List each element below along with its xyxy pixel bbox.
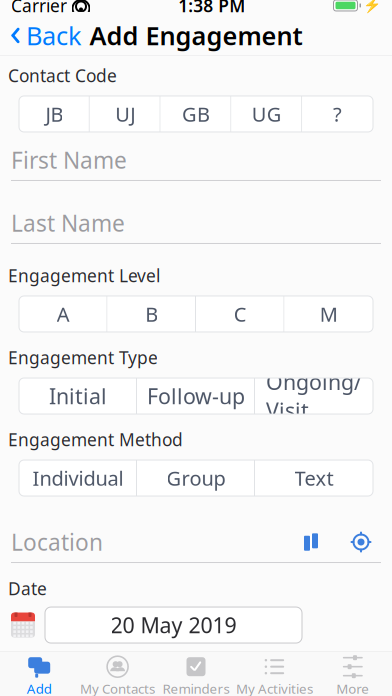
staticText: Back — [26, 19, 82, 52]
staticText: Carrier — [11, 0, 67, 17]
button[interactable]: Use current location — [347, 528, 375, 556]
button[interactable]: C — [196, 296, 284, 332]
button[interactable]: Group — [137, 460, 255, 496]
button[interactable]: Follow-up — [137, 378, 255, 414]
button[interactable]: Pick date — [11, 612, 35, 637]
staticText: Contact Code — [8, 64, 117, 87]
staticText: Group — [166, 465, 225, 491]
staticText: Individual — [32, 465, 123, 491]
staticText: B — [145, 301, 158, 327]
button[interactable]: Ongoing/Visit — [255, 378, 373, 414]
staticText: Ongoing/Visit — [266, 368, 362, 424]
staticText: 1:38 PM — [178, 0, 245, 17]
button[interactable]: Reminders — [157, 651, 235, 696]
button[interactable]: JB — [19, 96, 90, 132]
staticText: JB — [45, 101, 63, 127]
button[interactable]: ? — [302, 96, 373, 132]
staticText: UJ — [115, 101, 135, 127]
staticText: Add — [27, 680, 52, 696]
staticText: More — [336, 680, 369, 696]
staticText: GB — [182, 101, 210, 127]
staticText: Location — [11, 527, 103, 557]
button[interactable]: UG — [231, 96, 302, 132]
button[interactable]: Add — [0, 651, 78, 696]
staticText: UG — [252, 101, 282, 127]
staticText: Last Name — [11, 208, 125, 238]
staticText: Add Engagement — [89, 19, 302, 52]
button[interactable]: B — [107, 296, 196, 332]
staticText: A — [57, 301, 70, 327]
button[interactable]: Individual — [19, 460, 137, 496]
button[interactable]: GB — [161, 96, 231, 132]
staticText: C — [234, 301, 247, 327]
button[interactable]: My Contacts — [78, 651, 157, 696]
button[interactable]: Text — [255, 460, 373, 496]
staticText: Text — [294, 465, 333, 491]
staticText: My Contacts — [80, 680, 155, 696]
button[interactable]: More — [314, 651, 392, 696]
staticText: 20 May 2019 — [110, 611, 236, 639]
staticText: ⚡ — [363, 0, 381, 14]
button[interactable]: Initial — [19, 378, 137, 414]
button[interactable]: Back — [0, 15, 92, 55]
staticText: First Name — [11, 145, 127, 175]
staticText: Engagement Type — [8, 346, 158, 369]
button[interactable]: UJ — [90, 96, 161, 132]
button[interactable]: A — [19, 296, 107, 332]
button[interactable]: M — [284, 296, 373, 332]
staticText: Reminders — [162, 680, 229, 696]
button[interactable]: 20 May 2019 — [45, 607, 302, 643]
staticText: M — [320, 301, 338, 327]
staticText: Initial — [49, 382, 107, 410]
staticText: Follow-up — [147, 382, 245, 410]
staticText: Date — [8, 577, 47, 600]
staticText: Engagement Level — [8, 264, 160, 287]
button[interactable]: My Activities — [235, 651, 314, 696]
staticText: Engagement Method — [8, 428, 183, 451]
staticText: My Activities — [236, 680, 313, 696]
staticText: ? — [333, 101, 342, 127]
button[interactable]: Choose on map — [297, 528, 325, 555]
